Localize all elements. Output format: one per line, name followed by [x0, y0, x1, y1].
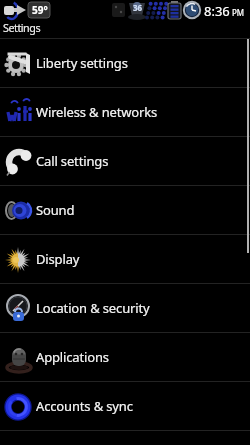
staticText: Applications: [36, 348, 109, 366]
staticText: PM: [232, 7, 245, 18]
button[interactable]: Wireless & networks: [0, 88, 250, 136]
staticText: Wireless & networks: [36, 103, 158, 121]
button[interactable]: Accounts & sync: [0, 382, 250, 430]
staticText: 8:36: [204, 2, 230, 20]
button[interactable]: Display: [0, 235, 250, 283]
button[interactable]: Applications: [0, 333, 250, 381]
button[interactable]: Liberty settings: [0, 39, 250, 87]
staticText: 36: [133, 2, 143, 13]
staticText: Settings: [3, 20, 41, 35]
button[interactable]: Sound: [0, 186, 250, 234]
staticText: 59°: [32, 3, 48, 17]
staticText: Display: [36, 250, 80, 268]
staticText: Accounts & sync: [36, 397, 133, 415]
button[interactable]: Call settings: [0, 137, 250, 185]
staticText: Location & security: [36, 299, 150, 317]
staticText: Liberty settings: [36, 54, 128, 72]
button[interactable]: Location & security: [0, 284, 250, 332]
staticText: Sound: [36, 201, 75, 219]
staticText: Call settings: [36, 152, 109, 170]
